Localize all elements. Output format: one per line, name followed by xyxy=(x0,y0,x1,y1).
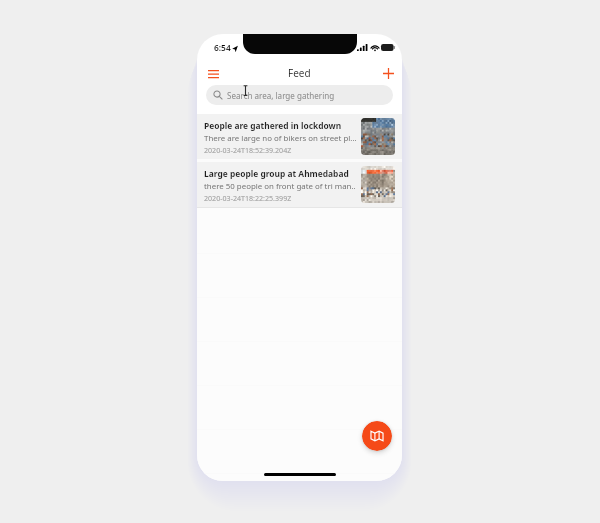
button[interactable]: Search area, large gathering xyxy=(206,85,393,105)
staticText: Search area, large gathering xyxy=(227,90,335,101)
button[interactable]: Menu xyxy=(204,64,223,83)
button[interactable]: Open map xyxy=(362,421,392,451)
staticText: Large people group at Ahmedabad xyxy=(204,168,349,179)
staticText: 2020-03-24T18:52:39.204Z xyxy=(204,145,292,155)
staticText: 2020-03-24T18:22:25.399Z xyxy=(204,193,292,203)
staticText: There are large no of bikers on street p… xyxy=(204,133,356,144)
staticText: Feed xyxy=(288,66,311,80)
button[interactable]: Large people group at Ahmedabad xyxy=(197,162,402,207)
staticText: People are gathered in lockdown xyxy=(204,120,342,131)
button[interactable]: Add report xyxy=(379,64,398,83)
button[interactable]: People are gathered in lockdown xyxy=(197,114,402,159)
staticText: 6:54 xyxy=(214,42,231,53)
staticText: there 50 people on front gate of tri man… xyxy=(204,181,356,192)
